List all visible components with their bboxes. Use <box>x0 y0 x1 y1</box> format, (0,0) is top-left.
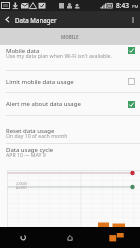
button[interactable]: Alert me about data usage <box>0 93 140 115</box>
staticText: 2.0GB ALERT <box>16 181 27 190</box>
staticText: Mobile data <box>6 47 40 55</box>
staticText: Alert me about data usage <box>6 100 81 108</box>
staticText: Data usage cycle <box>6 146 54 154</box>
staticText: 8:43 <box>116 1 129 10</box>
button[interactable]: Reset data usage <box>0 116 140 143</box>
button[interactable]: Data usage cycle <box>0 144 140 170</box>
staticText: MOBILE <box>61 34 79 40</box>
button[interactable]: Home <box>46 227 93 248</box>
staticText: Reset data usage <box>6 127 55 135</box>
button[interactable]: Back <box>0 11 15 28</box>
staticText: Use my data plan when Wi-Fi isn't availa… <box>6 52 112 59</box>
staticText: PM <box>132 4 139 10</box>
button[interactable]: MOBILE <box>0 28 140 45</box>
staticText: Limit mobile data usage <box>6 78 74 86</box>
button[interactable]: Recent apps <box>93 227 140 248</box>
staticText: APR 10 — MAY 9 <box>6 151 46 158</box>
staticText: On day 10 of each month <box>6 132 68 139</box>
button[interactable]: Limit mobile data usage <box>0 71 140 92</box>
button[interactable]: More options <box>126 11 140 28</box>
button[interactable]: Mobile data <box>0 45 140 70</box>
staticText: Data Manager <box>15 16 57 24</box>
button[interactable]: Back <box>0 227 46 248</box>
